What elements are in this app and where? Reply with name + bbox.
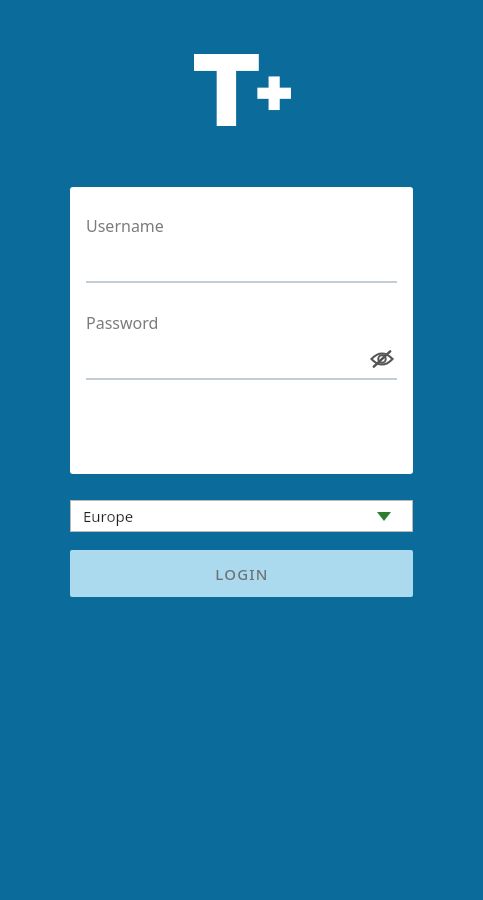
staticText: Password <box>86 312 159 334</box>
staticText: Europe <box>83 506 134 526</box>
button[interactable]: LOGIN <box>70 550 413 597</box>
button[interactable]: Password <box>86 312 397 380</box>
button[interactable]: Toggle password visibility <box>367 344 397 374</box>
button[interactable]: Europe <box>70 500 413 532</box>
staticText: Username <box>86 215 164 237</box>
staticText: LOGIN <box>215 564 269 584</box>
button[interactable]: Username <box>86 215 397 283</box>
